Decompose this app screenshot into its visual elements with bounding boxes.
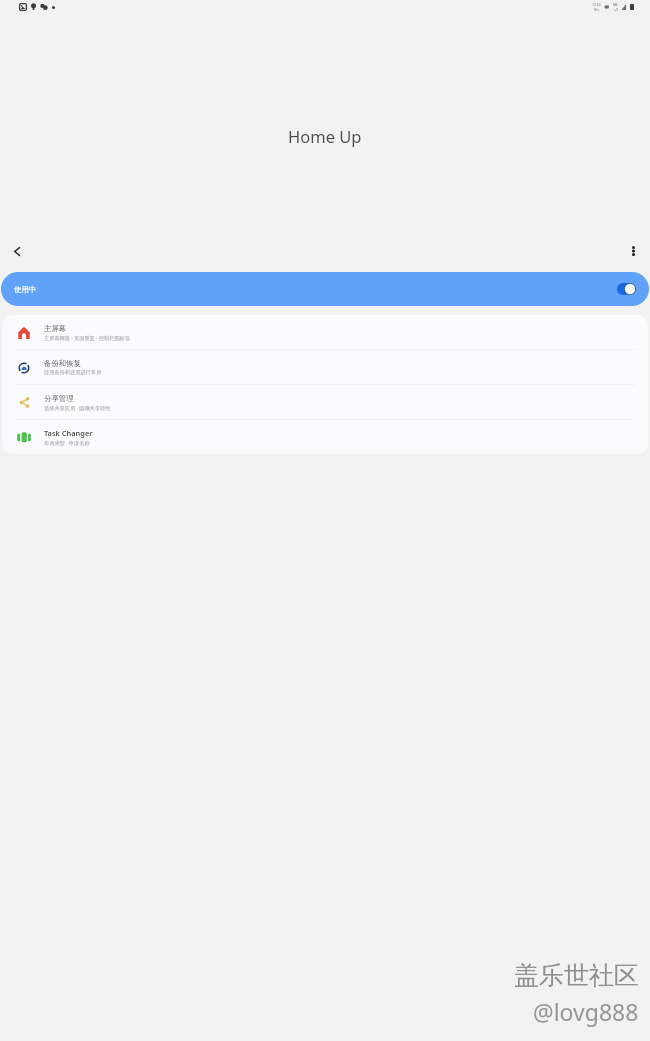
staticText: 主屏幕网格 · 页面重复 · 控制栏图标等 (44, 334, 130, 341)
button[interactable]: 分享管理 (2, 385, 648, 420)
staticText: Task Changer (44, 428, 93, 438)
staticText: K/s (594, 7, 599, 12)
staticText: +1 (614, 7, 618, 12)
button[interactable]: 主屏幕 (2, 315, 648, 350)
button[interactable]: 备份和恢复 (2, 350, 648, 385)
staticText: 使用中 (14, 285, 37, 294)
staticText: 12.60 (592, 2, 601, 7)
button[interactable]: Navigate up (1, 235, 33, 267)
staticText: 选择共享应用 · 隐藏共享特性 (44, 404, 111, 411)
button[interactable]: Task Changer (2, 420, 648, 454)
staticText: 分享管理 (44, 394, 74, 403)
button[interactable]: 使用中 (1, 272, 649, 306)
staticText: @lovg888 (533, 996, 639, 1027)
staticText: 备份和恢复 (44, 359, 81, 368)
button[interactable]: More options (617, 235, 649, 267)
staticText: 布局类型 · 申请名称 (44, 439, 90, 446)
staticText: 主屏幕 (44, 324, 67, 333)
staticText: 盖乐世社区 (514, 960, 639, 991)
staticText: Home Up (288, 125, 362, 147)
staticText: 使用备份和还原进行布局 (44, 369, 102, 376)
staticText: 5G (613, 2, 618, 7)
button[interactable]: Toggle Home Up (617, 283, 636, 295)
